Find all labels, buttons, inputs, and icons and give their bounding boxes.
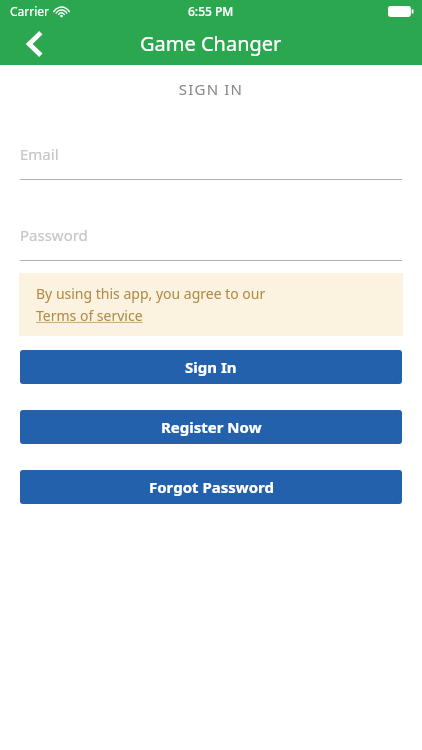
- staticText: Password: [20, 225, 88, 245]
- button[interactable]: Forgot Password: [20, 470, 402, 504]
- staticText: By using this app, you agree to our: [36, 284, 266, 303]
- staticText: Forgot Password: [149, 477, 274, 497]
- staticText: Email: [20, 144, 59, 164]
- staticText: Carrier: [10, 3, 50, 19]
- staticText: SIGN IN: [0, 79, 422, 99]
- button[interactable]: Sign In: [20, 350, 402, 384]
- staticText: Terms of service: [36, 306, 143, 325]
- button[interactable]: Register Now: [20, 410, 402, 444]
- staticText: 6:55 PM: [188, 3, 234, 19]
- button[interactable]: Back: [12, 22, 56, 65]
- staticText: Sign In: [185, 357, 237, 377]
- staticText: Game Changer: [140, 30, 282, 57]
- staticText: Register Now: [161, 417, 262, 437]
- button[interactable]: Terms of service: [36, 306, 143, 325]
